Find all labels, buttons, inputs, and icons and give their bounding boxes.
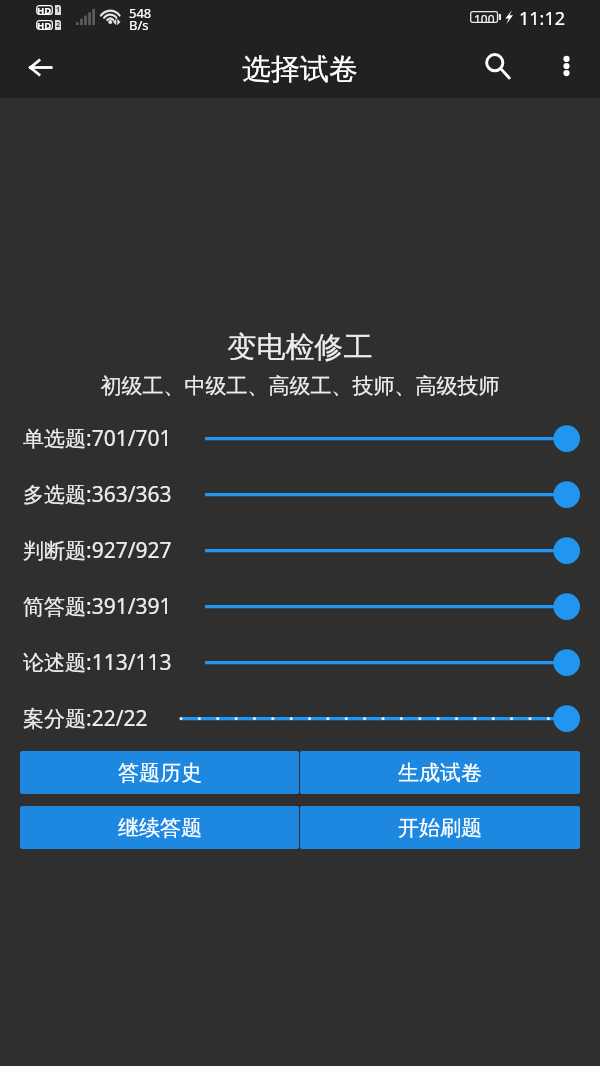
staticText: 选择试卷 xyxy=(242,51,358,88)
staticText: 答题历史 xyxy=(118,760,202,786)
staticText: 案分题:22/22 xyxy=(23,704,148,733)
staticText: HD xyxy=(37,4,52,14)
staticText: 继续答题 xyxy=(118,815,202,841)
staticText: 论述题:113/113 xyxy=(23,648,172,677)
staticText: 初级工、中级工、高级工、技师、高级技师 xyxy=(0,373,600,399)
button[interactable]: 开始刷题 xyxy=(300,806,580,849)
button[interactable]: 生成试卷 xyxy=(300,751,580,794)
staticText: B/s xyxy=(129,16,149,34)
button[interactable]: 论述题:113/113 xyxy=(0,634,600,690)
staticText: 变电检修工 xyxy=(0,329,600,366)
button[interactable]: 答题历史 xyxy=(20,751,299,794)
staticText: 简答题:391/391 xyxy=(23,592,172,621)
button[interactable]: 多选题:363/363 xyxy=(0,466,600,522)
staticText: 生成试卷 xyxy=(398,760,482,786)
button[interactable]: 继续答题 xyxy=(20,806,299,849)
button[interactable]: 简答题:391/391 xyxy=(0,578,600,634)
staticText: 2 xyxy=(56,20,61,30)
staticText: 多选题:363/363 xyxy=(23,480,172,509)
staticText: 1 xyxy=(56,5,61,15)
button[interactable]: More options xyxy=(542,42,590,90)
button[interactable]: Search xyxy=(473,42,521,90)
staticText: 判断题:927/927 xyxy=(23,536,172,565)
staticText: HD xyxy=(37,19,52,29)
button[interactable]: 单选题:701/701 xyxy=(0,410,600,466)
button[interactable]: Back xyxy=(16,43,64,91)
button[interactable]: 判断题:927/927 xyxy=(0,522,600,578)
staticText: 单选题:701/701 xyxy=(23,424,172,453)
staticText: 548 xyxy=(129,4,152,22)
staticText: 100 xyxy=(474,11,495,23)
staticText: 开始刷题 xyxy=(398,815,482,841)
button[interactable]: 案分题:22/22 xyxy=(0,690,600,746)
staticText: 11:12 xyxy=(519,6,566,31)
